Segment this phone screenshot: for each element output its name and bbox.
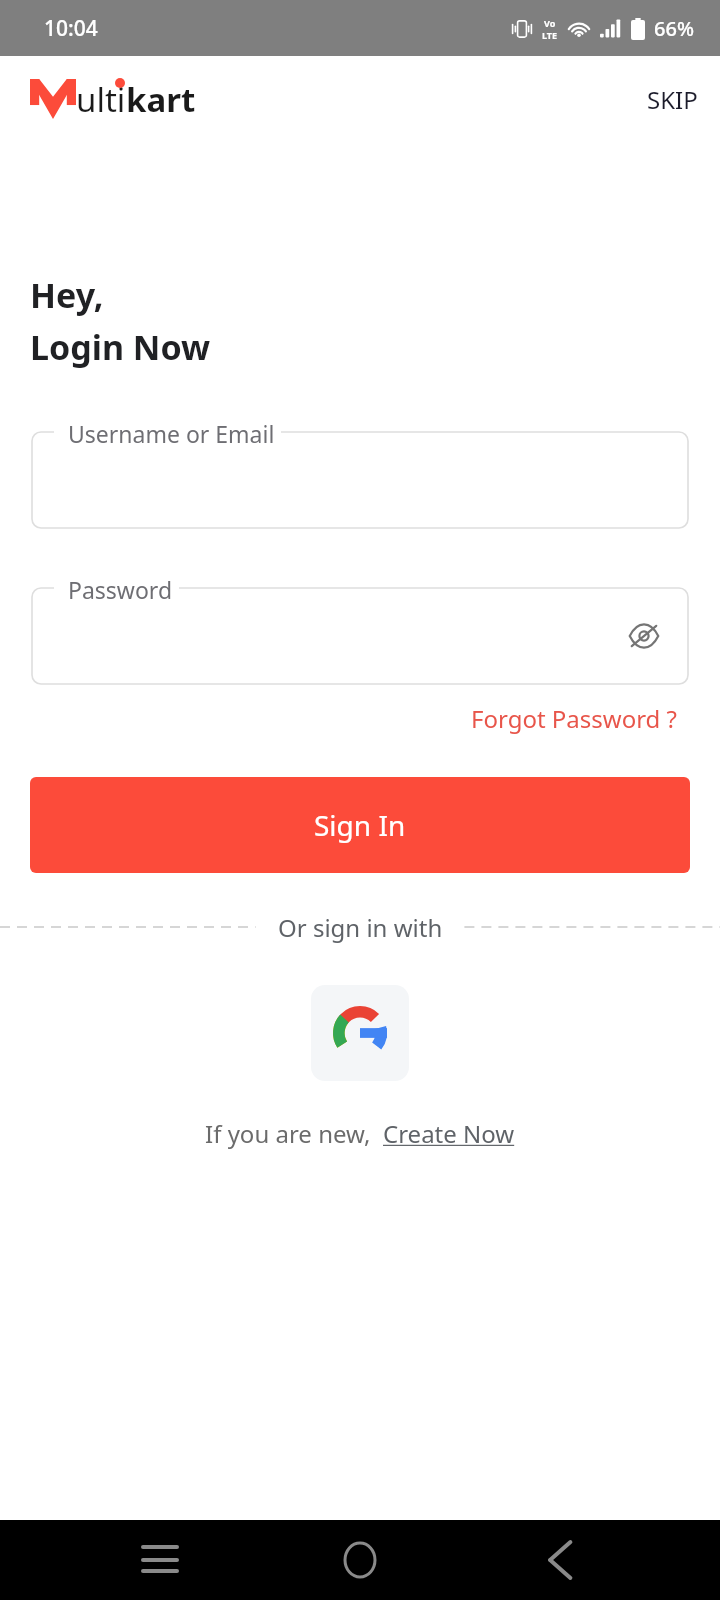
button[interactable]: SKIP: [625, 75, 720, 124]
button[interactable]: Sign In: [30, 777, 690, 873]
staticText: Password: [68, 574, 173, 605]
button[interactable]: Show password: [618, 610, 670, 662]
button[interactable]: Create Now: [383, 1117, 515, 1150]
staticText: Forgot Password ?: [471, 702, 678, 735]
staticText: Or sign in with: [278, 911, 443, 944]
staticText: Hey,: [30, 272, 104, 318]
button[interactable]: Password: [32, 588, 688, 684]
staticText: If you are new,: [205, 1117, 371, 1150]
staticText: LTE: [542, 29, 558, 41]
button[interactable]: Username or Email: [32, 432, 688, 528]
staticText: 10:04: [44, 14, 98, 43]
staticText: Create Now: [383, 1117, 515, 1150]
button[interactable]: Sign in with Google: [311, 985, 409, 1081]
staticText: ulti: [76, 77, 126, 122]
staticText: Login Now: [30, 324, 211, 370]
staticText: Username or Email: [68, 418, 275, 449]
staticText: Sign In: [314, 806, 406, 844]
button[interactable]: Home: [320, 1520, 400, 1600]
button[interactable]: Recents: [120, 1520, 200, 1600]
button[interactable]: Back: [520, 1520, 600, 1600]
staticText: Vo: [544, 17, 556, 29]
staticText: kart: [126, 77, 196, 122]
staticText: 66%: [654, 15, 694, 42]
button[interactable]: Forgot Password ?: [465, 696, 684, 741]
staticText: SKIP: [647, 83, 698, 116]
